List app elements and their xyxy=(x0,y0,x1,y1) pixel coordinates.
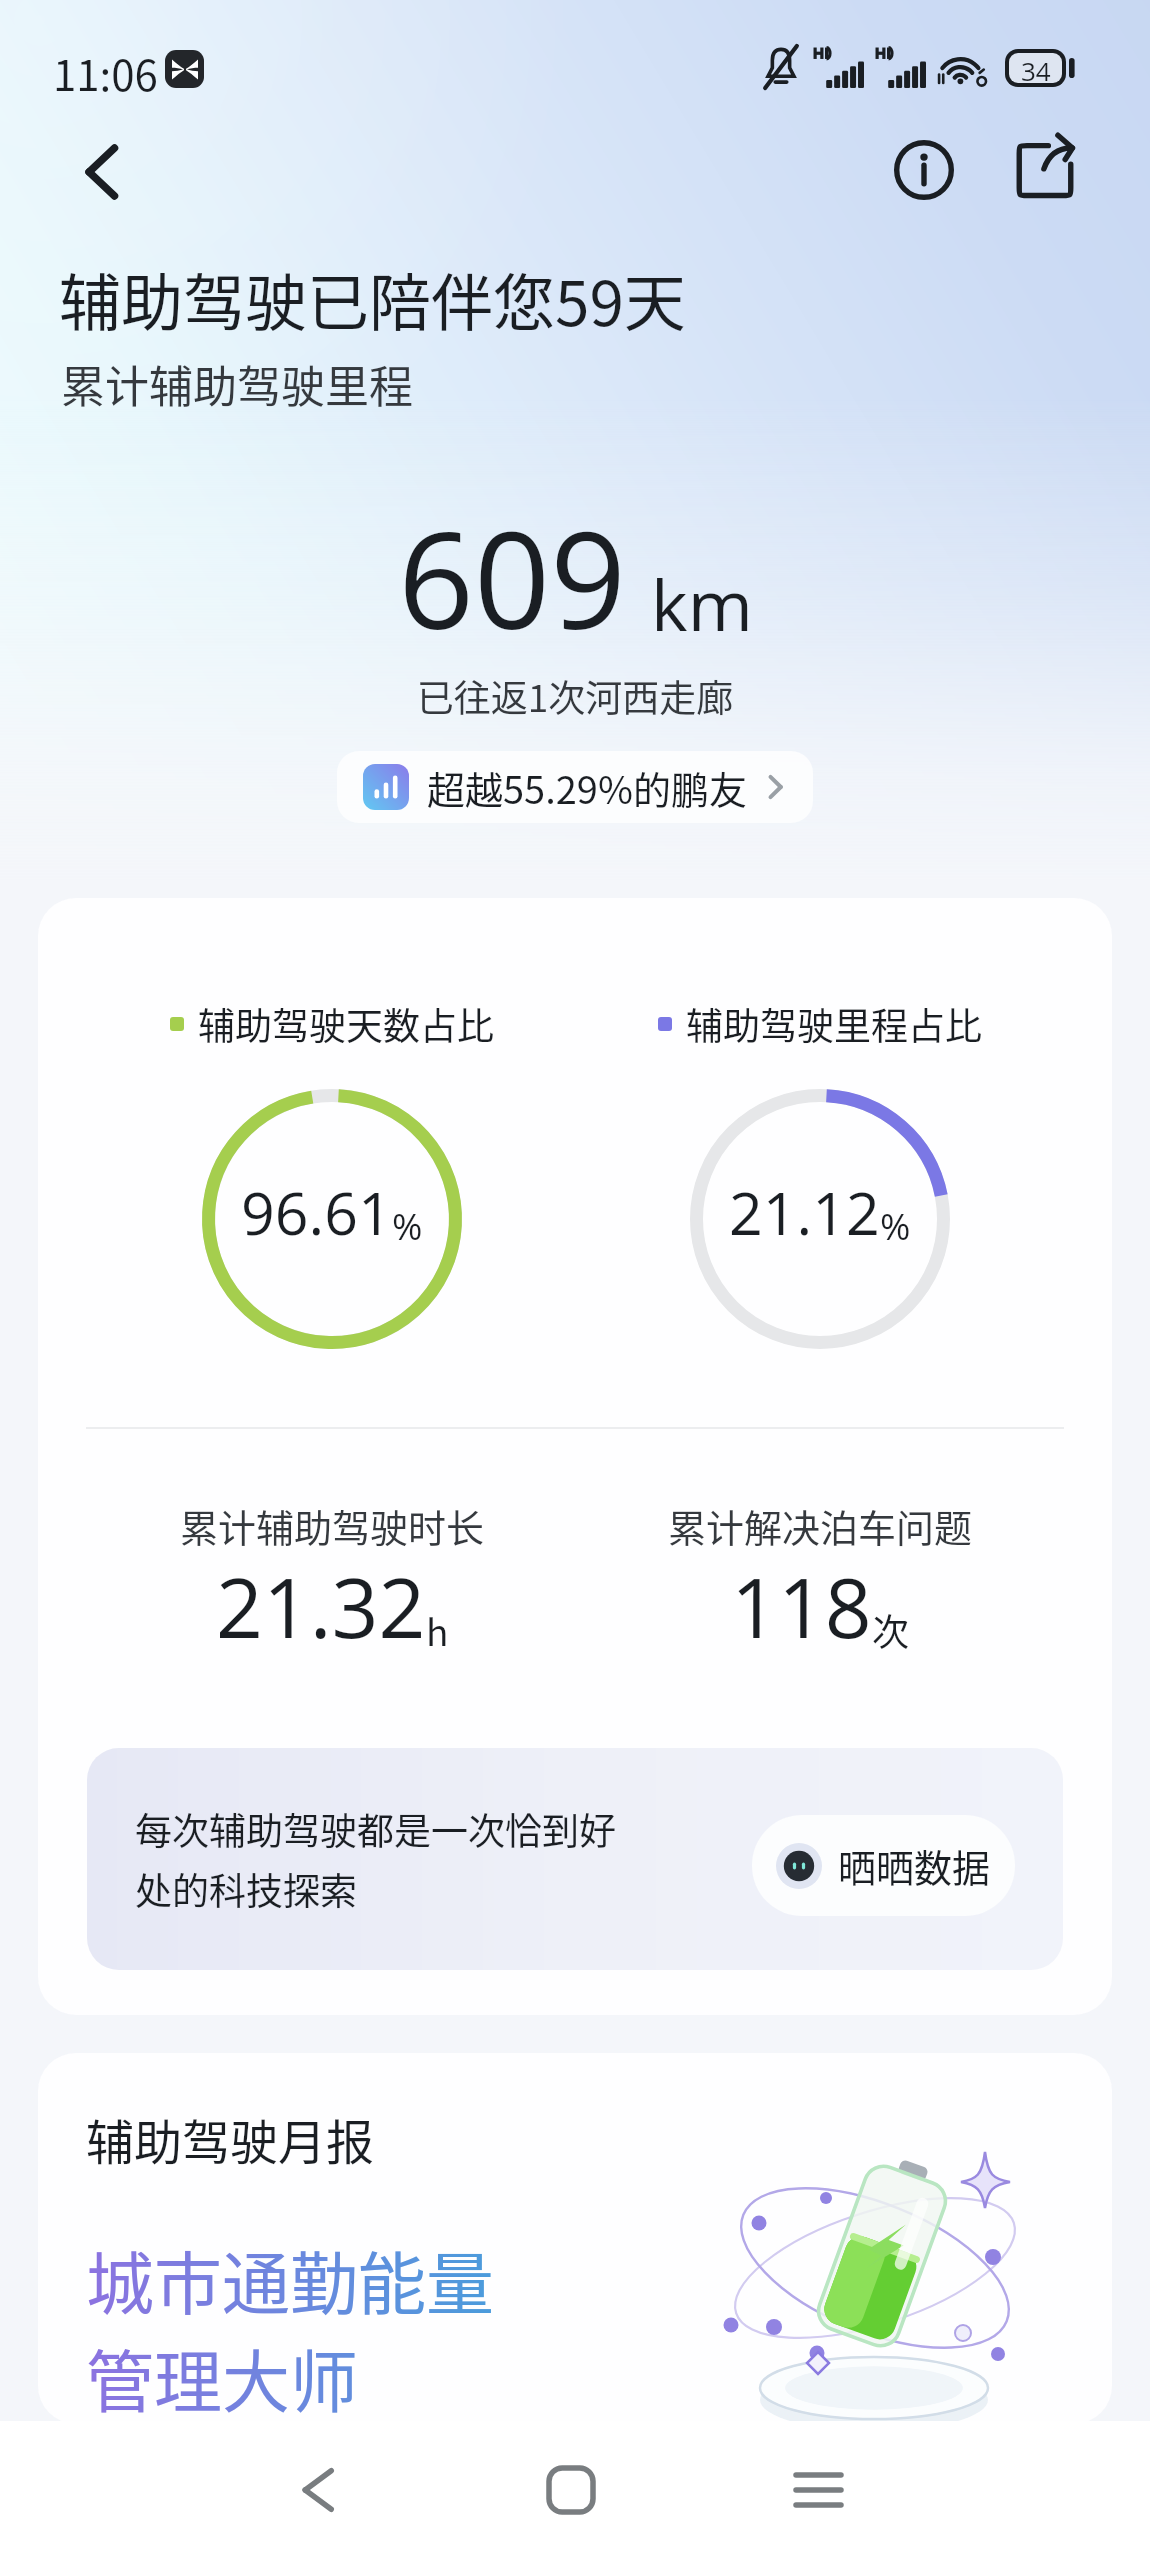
button[interactable]: Back xyxy=(262,2430,382,2550)
staticText: 辅助驾驶里程占比 xyxy=(686,997,982,1051)
button[interactable]: 晒晒数据 xyxy=(752,1815,1015,1916)
button[interactable]: Share xyxy=(995,121,1095,219)
staticText: 118 xyxy=(731,1550,872,1662)
staticText: 每次辅助驾驶都是一次恰到好 xyxy=(135,1802,616,1856)
staticText: 超越55.29%的鹏友 xyxy=(427,760,747,815)
staticText: 21.32 xyxy=(216,1550,426,1662)
staticText: 96.61 xyxy=(241,1172,392,1252)
staticText: 辅助驾驶月报 xyxy=(86,2104,375,2174)
staticText: 管理大师 xyxy=(86,2328,359,2424)
staticText: 已往返1次河西走廊 xyxy=(0,669,1150,723)
staticText: 处的科技探索 xyxy=(135,1862,357,1916)
button[interactable]: 超越55.29%的鹏友 xyxy=(337,751,813,823)
staticText: 累计解决泊车问题 xyxy=(668,1498,973,1553)
staticText: 辅助驾驶天数占比 xyxy=(198,997,494,1051)
button[interactable]: 辅助驾驶月报 xyxy=(38,2053,1112,2424)
staticText: 21.12 xyxy=(729,1172,880,1252)
button[interactable]: Recents xyxy=(758,2430,878,2550)
button[interactable]: Home xyxy=(511,2430,631,2550)
staticText: km xyxy=(651,556,753,651)
button[interactable]: Back xyxy=(68,139,134,205)
staticText: 晒晒数据 xyxy=(838,1838,991,1893)
staticText: 累计辅助驾驶里程 xyxy=(61,352,413,416)
staticText: 11:06 xyxy=(53,42,158,103)
staticText: 34 xyxy=(1021,53,1051,83)
staticText: % xyxy=(392,1200,423,1250)
button[interactable]: Info xyxy=(874,121,974,219)
staticText: 次 xyxy=(872,1603,909,1657)
staticText: 城市通勤能量 xyxy=(86,2230,495,2328)
staticText: 累计辅助驾驶时长 xyxy=(180,1498,485,1553)
staticText: 609 xyxy=(398,487,627,668)
staticText: 辅助驾驶已陪伴您59天 xyxy=(59,254,686,344)
staticText: % xyxy=(880,1200,911,1250)
staticText: h xyxy=(426,1603,449,1657)
